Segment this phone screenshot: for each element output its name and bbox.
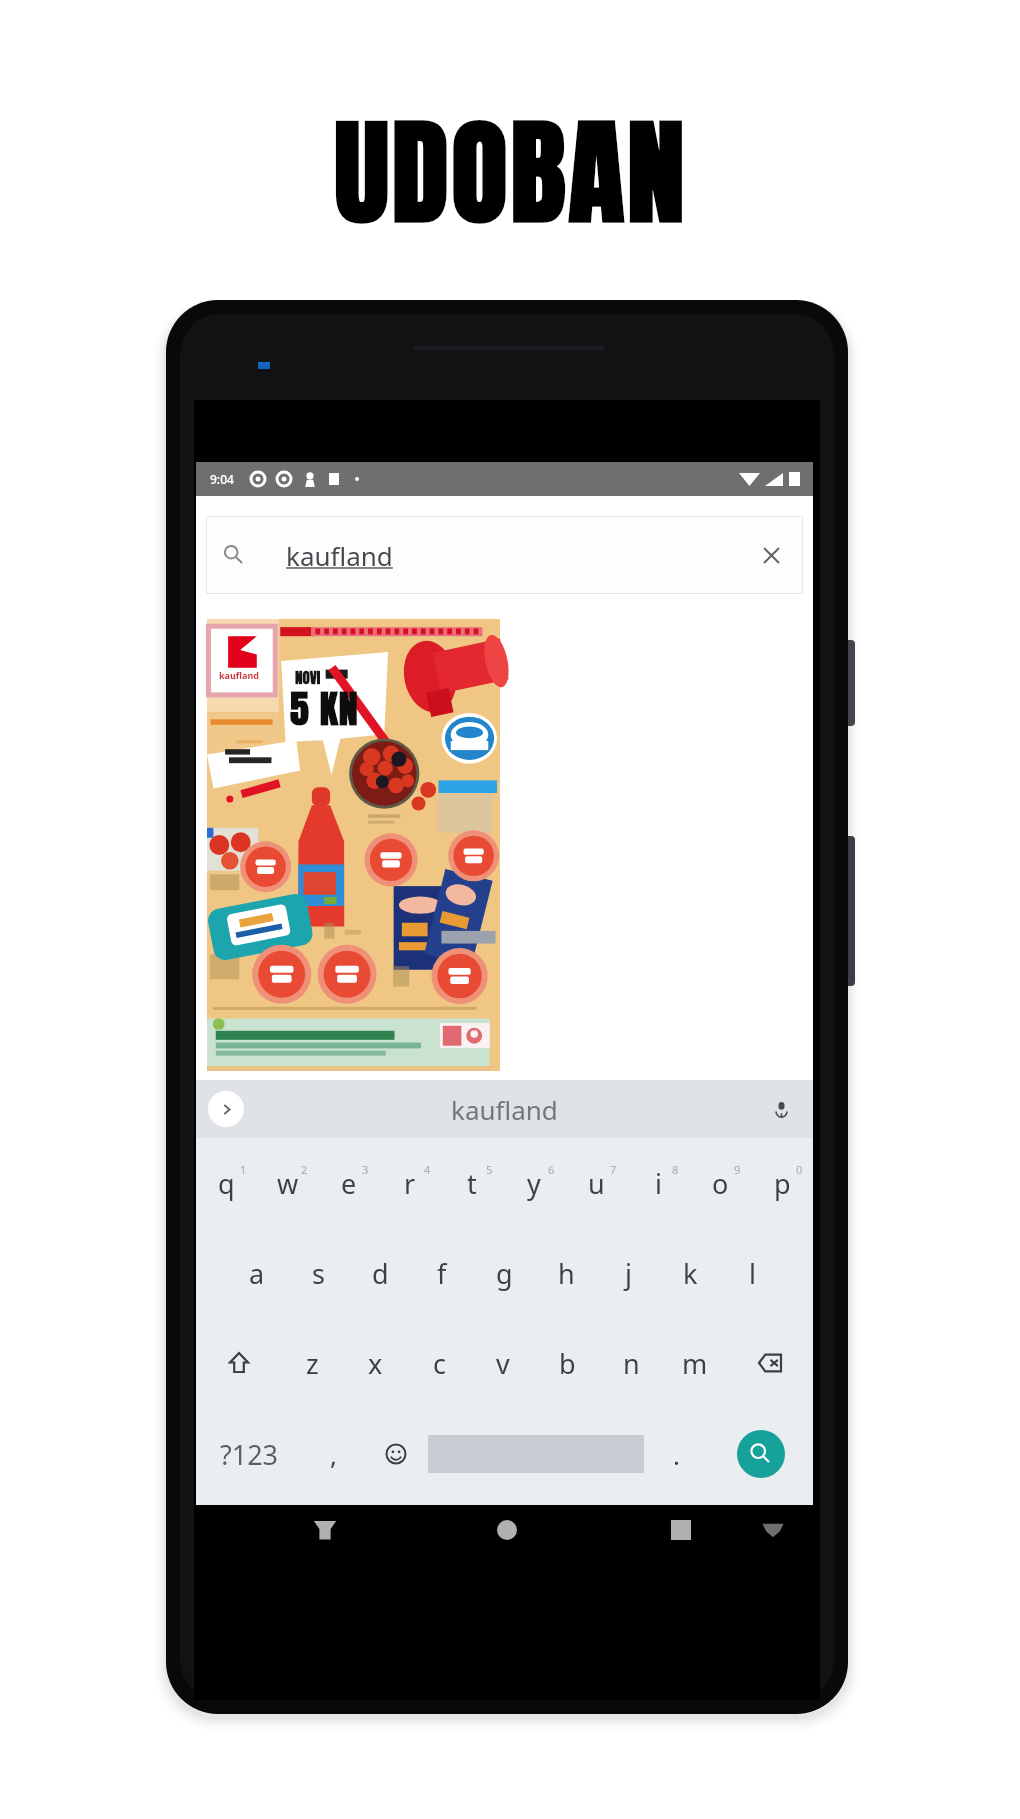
staticText: g — [496, 1255, 513, 1292]
button[interactable]: u — [565, 1138, 627, 1228]
staticText: o — [712, 1165, 729, 1202]
button[interactable]: More suggestions — [208, 1091, 244, 1127]
button[interactable]: Recent apps — [658, 1507, 704, 1553]
button[interactable]: p — [751, 1138, 813, 1228]
button[interactable]: h — [535, 1228, 597, 1318]
staticText: v — [496, 1345, 510, 1382]
staticText: f — [437, 1255, 447, 1292]
button[interactable]: ?123 — [196, 1408, 302, 1500]
button[interactable]: y — [503, 1138, 565, 1228]
staticText: 8 — [672, 1162, 679, 1177]
staticText: s — [312, 1255, 325, 1292]
staticText: r — [404, 1165, 416, 1202]
staticText: 7 — [610, 1162, 617, 1177]
staticText: , — [330, 1437, 337, 1472]
staticText: z — [306, 1345, 319, 1382]
button[interactable]: e — [318, 1138, 379, 1228]
staticText: q — [218, 1165, 235, 1202]
staticText: i — [655, 1165, 662, 1202]
button[interactable]: b — [535, 1318, 599, 1408]
staticText: 9:04 — [210, 471, 234, 487]
staticText: u — [588, 1165, 605, 1202]
staticText: 5 — [486, 1162, 493, 1177]
button[interactable]: s — [287, 1228, 349, 1318]
staticText: NOVI — [295, 666, 321, 689]
staticText: t — [467, 1165, 477, 1202]
button[interactable]: v — [471, 1318, 535, 1408]
button[interactable]: z — [281, 1318, 344, 1408]
staticText: a — [249, 1255, 265, 1292]
button[interactable]: Clear search — [757, 541, 785, 569]
staticText: 3 — [362, 1162, 369, 1177]
button[interactable]: j — [597, 1228, 659, 1318]
button[interactable]: Search field: kaufland — [206, 516, 803, 594]
staticText: n — [623, 1345, 640, 1382]
button[interactable]: . — [644, 1408, 709, 1500]
button[interactable]: o — [689, 1138, 751, 1228]
staticText: 1 — [240, 1162, 247, 1177]
button[interactable]: Hide keyboard — [750, 1507, 796, 1553]
staticText: l — [749, 1255, 756, 1292]
staticText: kaufland — [286, 538, 393, 573]
button[interactable]: g — [473, 1228, 535, 1318]
staticText: 5 KN — [290, 680, 359, 737]
staticText: m — [682, 1345, 708, 1382]
button[interactable]: m — [663, 1318, 727, 1408]
staticText: d — [372, 1255, 389, 1292]
staticText: kaufland — [451, 1092, 558, 1127]
staticText: h — [558, 1255, 575, 1292]
staticText: UDOBAN — [334, 86, 688, 259]
button[interactable]: x — [344, 1318, 407, 1408]
staticText: kaufland — [219, 669, 259, 681]
button[interactable]: k — [659, 1228, 721, 1318]
staticText: 4 — [424, 1162, 431, 1177]
button[interactable]: w — [257, 1138, 318, 1228]
button[interactable]: r — [379, 1138, 441, 1228]
button[interactable]: q — [196, 1138, 257, 1228]
staticText: 2 — [301, 1162, 308, 1177]
staticText: k — [683, 1255, 698, 1292]
button[interactable]: Kaufland flyer — [207, 619, 500, 1071]
button[interactable]: n — [599, 1318, 663, 1408]
button[interactable]: Shift — [196, 1318, 281, 1408]
button[interactable]: Emoji — [364, 1408, 428, 1500]
button[interactable]: d — [349, 1228, 411, 1318]
staticText: c — [433, 1345, 446, 1382]
button[interactable]: Back — [302, 1507, 348, 1553]
staticText: p — [774, 1165, 791, 1202]
staticText: 6 — [548, 1162, 555, 1177]
staticText: 0 — [796, 1162, 803, 1177]
button[interactable]: f — [411, 1228, 473, 1318]
staticText: e — [341, 1165, 357, 1202]
staticText: . — [673, 1437, 680, 1472]
button[interactable]: l — [721, 1228, 783, 1318]
button[interactable]: Home — [484, 1507, 530, 1553]
button[interactable]: i — [627, 1138, 689, 1228]
staticText: ?123 — [220, 1436, 279, 1473]
staticText: 9 — [734, 1162, 741, 1177]
button[interactable]: t — [441, 1138, 503, 1228]
staticText: w — [277, 1165, 299, 1202]
staticText: b — [559, 1345, 576, 1382]
button[interactable]: a — [226, 1228, 287, 1318]
button[interactable]: Backspace — [727, 1318, 813, 1408]
staticText: j — [625, 1255, 632, 1292]
button[interactable]: c — [407, 1318, 471, 1408]
button[interactable]: Voice input — [765, 1093, 797, 1125]
staticText: x — [368, 1345, 383, 1382]
staticText: y — [527, 1165, 541, 1202]
button[interactable]: Search — [737, 1430, 785, 1478]
button[interactable]: , — [302, 1408, 364, 1500]
